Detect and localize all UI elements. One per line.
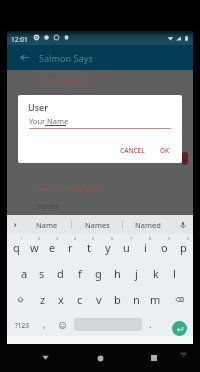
button[interactable]: q: [7, 234, 25, 260]
staticText: 0: [187, 236, 190, 241]
button[interactable]: d: [51, 260, 70, 286]
staticText: Game Preferences: [37, 76, 92, 84]
button[interactable]: Comma: [35, 312, 53, 338]
staticText: b: [114, 292, 121, 307]
staticText: ?123: [15, 321, 29, 330]
staticText: User: [28, 101, 48, 113]
button[interactable]: c: [70, 286, 89, 312]
staticText: Salmon Says: [39, 52, 93, 64]
button[interactable]: Named: [123, 215, 173, 234]
staticText: m: [150, 292, 161, 307]
button[interactable]: r: [61, 234, 79, 260]
staticText: f: [78, 266, 82, 281]
button[interactable]: Name: [22, 215, 71, 234]
button[interactable]: m: [146, 286, 165, 312]
staticText: Name: [36, 220, 58, 230]
staticText: 2: [38, 236, 41, 241]
staticText: n: [133, 292, 140, 307]
button[interactable]: y: [98, 234, 117, 260]
staticText: 1: [20, 236, 23, 241]
staticText: ,: [43, 318, 46, 330]
staticText: o: [161, 240, 168, 255]
staticText: r: [68, 240, 73, 255]
button[interactable]: j: [127, 260, 146, 286]
staticText: a: [21, 266, 28, 281]
staticText: v: [96, 292, 102, 307]
staticText: l: [173, 266, 176, 281]
button[interactable]: g: [89, 260, 108, 286]
button[interactable]: l: [165, 260, 184, 286]
staticText: 9: [168, 236, 171, 241]
staticText: u: [123, 240, 130, 255]
staticText: d: [57, 266, 64, 281]
button[interactable]: w: [25, 234, 43, 260]
button[interactable]: Home: [88, 346, 112, 370]
button[interactable]: ?123: [9, 312, 34, 338]
staticText: q: [13, 240, 20, 255]
staticText: s: [39, 266, 45, 281]
button[interactable]: Hide keyboard: [175, 346, 191, 362]
staticText: 5: [92, 236, 95, 241]
button[interactable]: Voice input: [173, 215, 193, 234]
staticText: 8: [149, 236, 152, 241]
button[interactable]: f: [70, 260, 89, 286]
button[interactable]: b: [108, 286, 127, 312]
staticText: y: [105, 240, 111, 255]
staticText: j: [135, 266, 138, 281]
staticText: Modes: [37, 202, 59, 211]
staticText: p: [180, 240, 187, 255]
staticText: 6: [111, 236, 114, 241]
staticText: z: [40, 292, 46, 307]
button[interactable]: Backspace: [165, 286, 193, 312]
staticText: .: [149, 318, 152, 330]
button[interactable]: Enter: [172, 321, 187, 336]
staticText: g: [95, 266, 102, 281]
staticText: h: [114, 266, 121, 281]
staticText: OK: [160, 146, 170, 155]
staticText: w: [30, 240, 39, 255]
button[interactable]: t: [79, 234, 98, 260]
button[interactable]: Back: [33, 345, 57, 369]
button[interactable]: s: [33, 260, 51, 286]
button[interactable]: i: [136, 234, 155, 260]
button[interactable]: Period: [142, 312, 158, 338]
staticText: 3: [56, 236, 59, 241]
staticText: Named: [135, 220, 161, 230]
button[interactable]: CANCEL: [114, 143, 150, 157]
button[interactable]: n: [127, 286, 146, 312]
staticText: CANCEL: [120, 146, 145, 155]
staticText: c: [77, 292, 83, 307]
button[interactable]: OK: [154, 143, 176, 157]
staticText: 7: [130, 236, 133, 241]
button[interactable]: u: [117, 234, 136, 260]
staticText: Select Difficulty Mode: [37, 185, 102, 193]
staticText: e: [49, 240, 56, 255]
button[interactable]: p: [174, 234, 193, 260]
button[interactable]: z: [34, 286, 52, 312]
staticText: k: [153, 266, 159, 281]
button[interactable]: x: [52, 286, 70, 312]
staticText: 4: [74, 236, 77, 241]
button[interactable]: v: [89, 286, 108, 312]
button[interactable]: Shift: [7, 286, 34, 312]
button[interactable]: Back: [11, 45, 37, 70]
button[interactable]: e: [43, 234, 61, 260]
staticText: t: [87, 240, 91, 255]
button[interactable]: More suggestions: [7, 215, 22, 234]
staticText: 12:01: [11, 35, 28, 44]
button[interactable]: a: [15, 260, 33, 286]
button[interactable]: Names: [72, 215, 122, 234]
button[interactable]: h: [108, 260, 127, 286]
staticText: Names: [85, 220, 110, 230]
button[interactable]: k: [146, 260, 165, 286]
button[interactable]: Recent apps: [142, 346, 166, 370]
button[interactable]: o: [155, 234, 174, 260]
staticText: Your Name: [29, 116, 69, 126]
staticText: x: [58, 292, 64, 307]
staticText: i: [144, 240, 147, 255]
button[interactable]: Emoji: [53, 312, 71, 338]
